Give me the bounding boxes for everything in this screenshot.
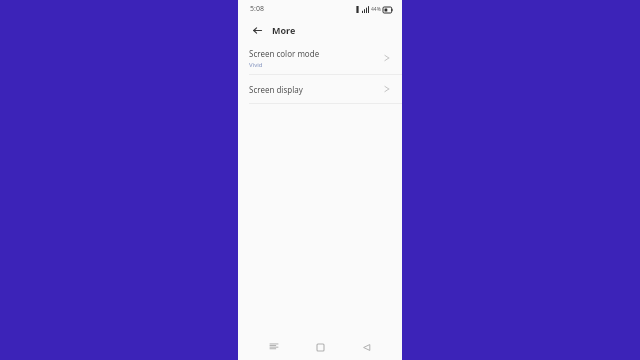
- staticText: More: [272, 24, 296, 36]
- button[interactable]: Screen display: [238, 75, 402, 103]
- staticText: Screen color mode: [249, 48, 320, 59]
- staticText: Screen display: [249, 84, 303, 95]
- button[interactable]: Back: [356, 336, 378, 358]
- button[interactable]: Back: [249, 22, 265, 38]
- button[interactable]: Screen color mode: [238, 42, 402, 74]
- staticText: 44%: [371, 6, 381, 13]
- staticText: 5:08: [250, 4, 264, 14]
- staticText: Vivid: [249, 61, 263, 69]
- button[interactable]: Recent apps: [263, 336, 285, 358]
- button[interactable]: Home: [309, 336, 331, 358]
